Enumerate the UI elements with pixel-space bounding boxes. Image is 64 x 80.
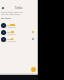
staticText: My tasks: [1, 17, 11, 20]
staticText: 3 subtasks: [6, 40, 17, 43]
staticText: 3 subtasks: [6, 26, 17, 29]
staticText: on this week now: [1, 13, 20, 16]
staticText: Tasks: [15, 6, 23, 10]
staticText: Design: [6, 24, 14, 27]
staticText: Design: [6, 38, 14, 41]
staticText: Design: [6, 31, 14, 34]
button[interactable]: Design: [0, 36, 38, 43]
button[interactable]: Design: [0, 22, 38, 29]
button[interactable]: Add task: [31, 67, 36, 72]
button[interactable]: Menu: [0, 5, 5, 10]
button[interactable]: Design: [0, 29, 38, 36]
staticText: 3 subtasks: [6, 33, 17, 36]
staticText: Track every task you: [1, 11, 23, 14]
